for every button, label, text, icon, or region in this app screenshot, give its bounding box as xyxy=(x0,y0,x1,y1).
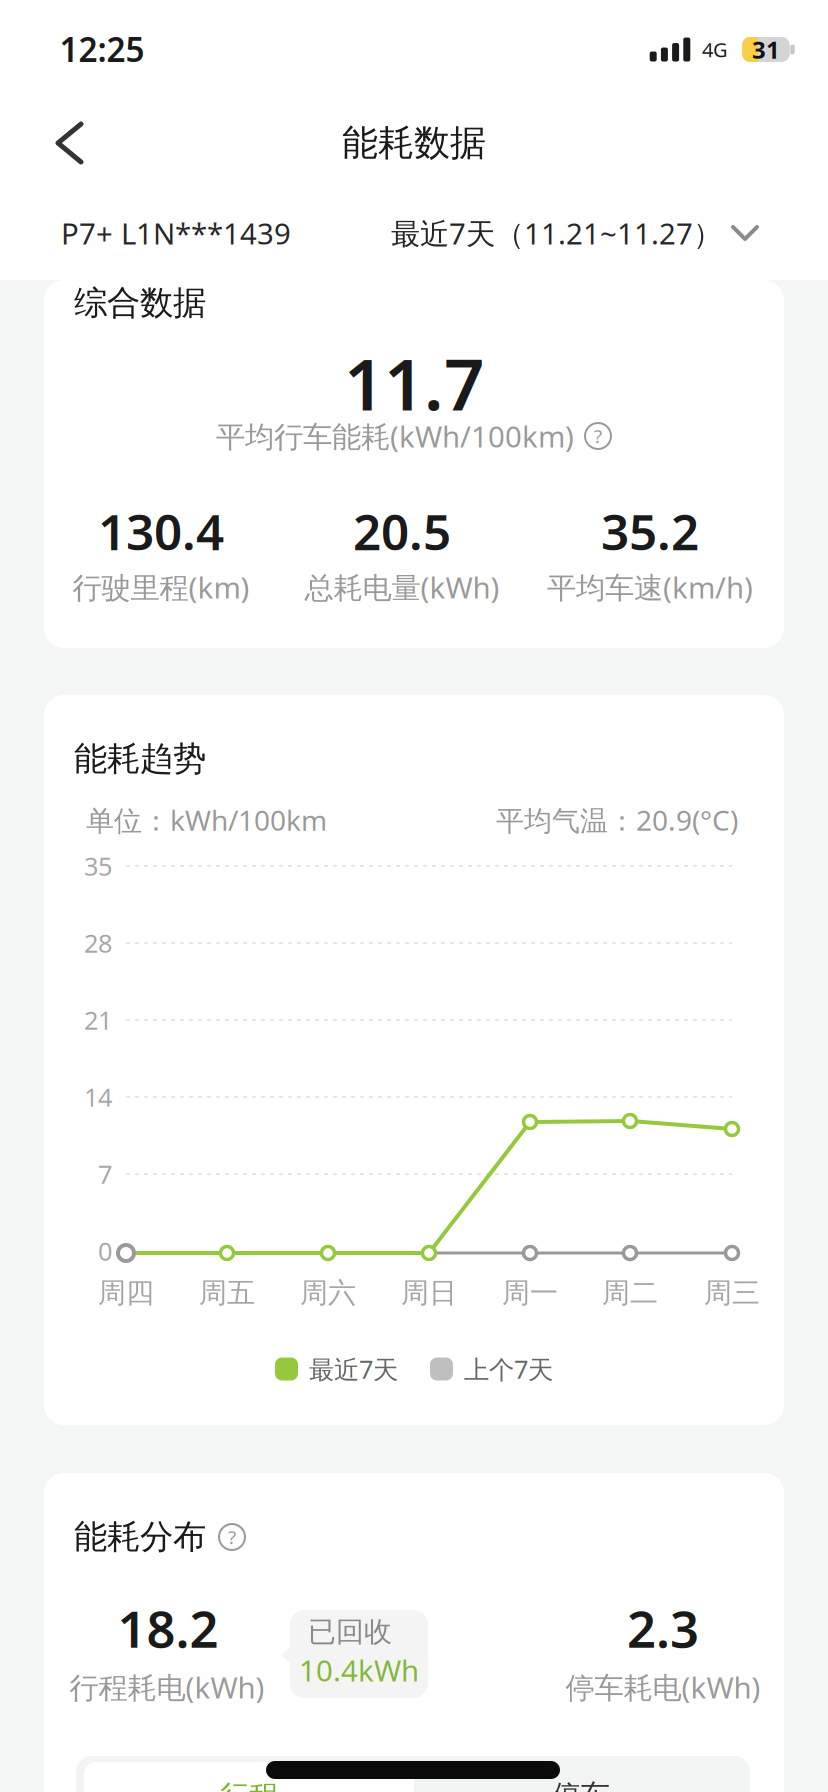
staticText: 20.5 xyxy=(353,498,451,564)
staticText: 130.4 xyxy=(98,498,224,564)
staticText: 28 xyxy=(84,926,112,960)
staticText: 能耗数据 xyxy=(342,121,486,165)
button[interactable]: 停车 xyxy=(416,1762,746,1792)
button[interactable]: 最近7天（11.21~11.27） xyxy=(391,213,760,252)
staticText: 18.2 xyxy=(117,1594,218,1662)
staticText: 10.4kWh xyxy=(299,1650,419,1689)
staticText: 总耗电量(kWh) xyxy=(304,567,499,606)
staticText: 能耗分布 xyxy=(74,1516,206,1557)
staticText: 21 xyxy=(84,1003,112,1037)
staticText: 7 xyxy=(98,1157,112,1191)
staticText: ? xyxy=(228,1525,236,1549)
staticText: 综合数据 xyxy=(74,282,206,323)
staticText: 12:25 xyxy=(59,27,144,71)
button[interactable]: 行程 xyxy=(84,1762,414,1792)
staticText: 35 xyxy=(84,849,112,883)
staticText: 11.7 xyxy=(344,336,484,430)
staticText: 0 xyxy=(98,1234,112,1268)
staticText: 平均车速(km/h) xyxy=(547,567,753,606)
staticText: 35.2 xyxy=(601,498,699,564)
staticText: 最近7天 xyxy=(309,1352,398,1386)
staticText: 周一 xyxy=(502,1276,558,1310)
staticText: 14 xyxy=(84,1080,112,1114)
staticText: 单位：kWh/100km xyxy=(86,801,327,839)
staticText: ? xyxy=(594,424,602,448)
staticText: 最近7天（11.21~11.27） xyxy=(391,213,722,252)
staticText: 周三 xyxy=(704,1276,760,1310)
staticText: 周五 xyxy=(199,1276,255,1310)
staticText: 平均行车能耗(kWh/100km) xyxy=(216,416,574,455)
staticText: 停车耗电(kWh) xyxy=(565,1667,760,1706)
staticText: 31 xyxy=(752,34,780,65)
staticText: 4G xyxy=(702,36,728,63)
staticText: 行程耗电(kWh) xyxy=(69,1667,264,1706)
staticText: 能耗趋势 xyxy=(74,738,206,779)
staticText: 周二 xyxy=(602,1276,658,1310)
staticText: P7+ L1N***1439 xyxy=(61,213,291,252)
staticText: 行程 xyxy=(220,1778,278,1792)
staticText: 停车 xyxy=(552,1778,610,1792)
staticText: 周六 xyxy=(300,1276,356,1310)
staticText: 平均气温：20.9(°C) xyxy=(496,801,738,839)
button[interactable]: ? xyxy=(584,422,612,450)
button[interactable] xyxy=(47,121,91,165)
button[interactable]: ? xyxy=(218,1523,246,1551)
staticText: 2.3 xyxy=(627,1594,699,1662)
staticText: 上个7天 xyxy=(464,1352,553,1386)
staticText: 周四 xyxy=(98,1276,154,1310)
staticText: 周日 xyxy=(401,1276,457,1310)
staticText: 已回收 xyxy=(308,1615,392,1649)
staticText: 行驶里程(km) xyxy=(72,567,249,606)
